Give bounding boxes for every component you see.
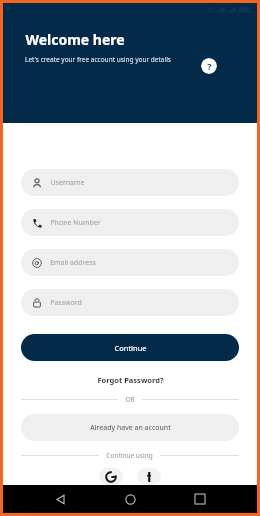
button[interactable]: Already have an account: [21, 414, 239, 441]
button[interactable]: Sign in with Google: [99, 468, 123, 485]
staticText: Continue using: [106, 451, 153, 460]
staticText: Already have an account: [90, 423, 171, 433]
staticText: Continue: [114, 343, 147, 353]
staticText: Let's create your free account using you…: [25, 55, 171, 64]
staticText: Username: [50, 178, 85, 188]
staticText: Email address: [50, 258, 96, 268]
button[interactable]: Forgot Password?: [21, 375, 239, 385]
staticText: Forgot Password?: [97, 375, 164, 385]
button[interactable]: Password: [21, 289, 239, 316]
button[interactable]: Username: [21, 169, 239, 196]
staticText: Password: [50, 298, 82, 308]
button[interactable]: Phone Number: [21, 209, 239, 236]
button[interactable]: Back: [47, 486, 73, 512]
staticText: Phone Number: [50, 218, 101, 228]
button[interactable]: Email address: [21, 249, 239, 276]
button[interactable]: Recent apps: [187, 486, 213, 512]
staticText: OR: [125, 395, 135, 404]
staticText: ?: [207, 60, 212, 72]
button[interactable]: Help: [201, 58, 217, 74]
button[interactable]: Sign in with Facebook: [137, 468, 161, 485]
button[interactable]: Continue: [21, 334, 239, 361]
staticText: Welcome here: [25, 30, 125, 49]
button[interactable]: Home: [117, 486, 143, 512]
